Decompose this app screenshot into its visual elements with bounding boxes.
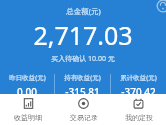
staticText: 累计收益(元) [120, 73, 157, 82]
staticText: 总金额(元) [66, 6, 101, 16]
staticText: 昨日收益(元) [9, 73, 46, 82]
button[interactable]: 累计收益(元) [111, 73, 166, 94]
staticText: 2,717.03 [33, 18, 133, 52]
button[interactable]: 昨日收益(元) [0, 73, 54, 94]
button[interactable]: 收益明细 [0, 94, 56, 125]
staticText: 持有收益(元) [64, 73, 101, 82]
button[interactable]: Help [156, 0, 166, 13]
staticText: 我的定投 [125, 113, 153, 122]
staticText: -315.81 [65, 85, 100, 94]
button[interactable]: 我的定投 [111, 94, 166, 125]
button[interactable]: 交易记录 [56, 94, 111, 125]
staticText: 收益明细 [14, 113, 42, 122]
button[interactable]: 持有收益(元) [55, 73, 110, 94]
staticText: 0.00 [17, 85, 37, 94]
staticText: 买入待确认 10.00 元 [51, 54, 115, 64]
staticText: 交易记录 [70, 113, 98, 122]
staticText: -370.42 [121, 85, 156, 94]
